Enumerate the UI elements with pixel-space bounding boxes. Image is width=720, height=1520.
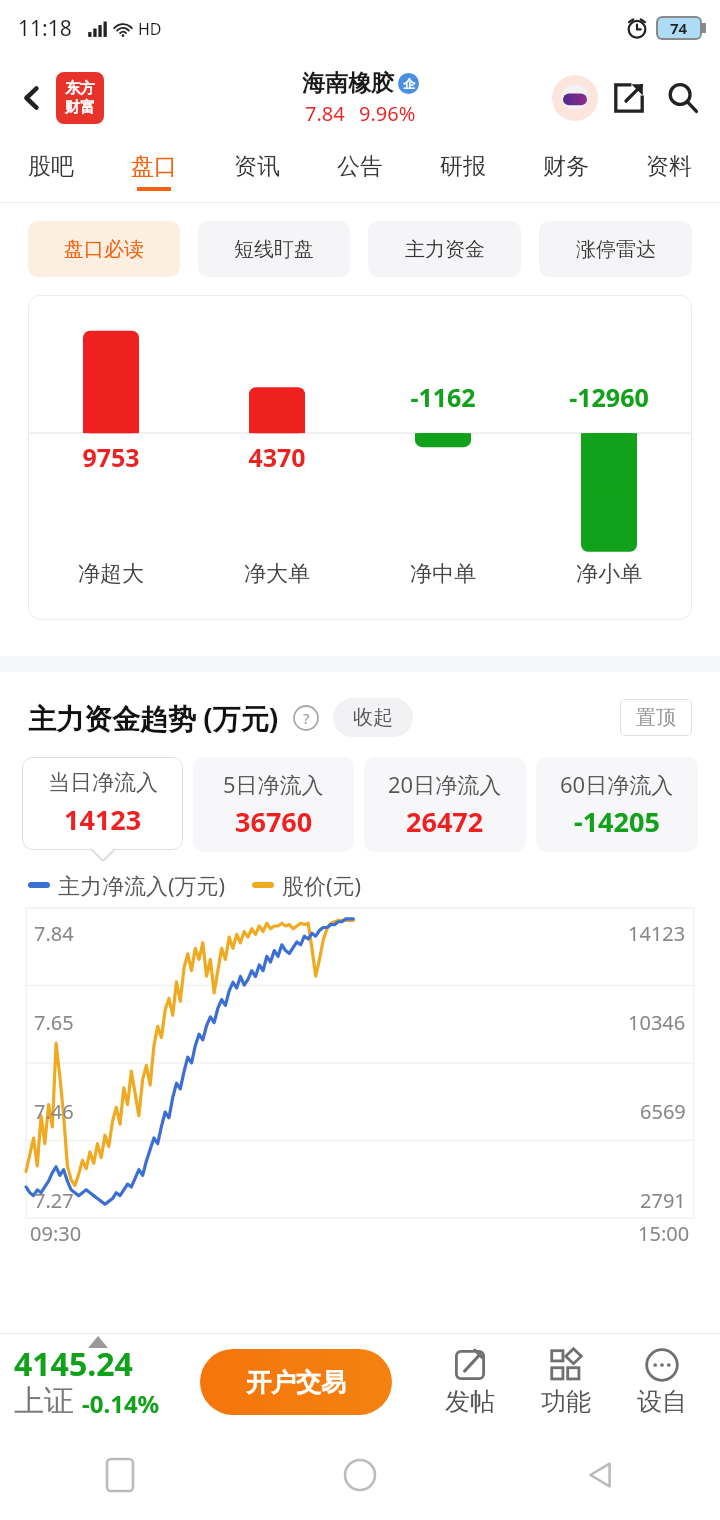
button[interactable]: 资料	[617, 140, 720, 202]
button[interactable]: 当日净流入	[22, 757, 183, 850]
staticText: 11:18	[18, 14, 72, 43]
staticText: 6569	[640, 1098, 686, 1125]
button[interactable]: 主力资金	[368, 221, 521, 277]
staticText: 14123	[64, 801, 142, 838]
button[interactable]: Search	[656, 71, 710, 125]
button[interactable]: 资讯	[205, 140, 308, 202]
button[interactable]: Back	[480, 1430, 720, 1520]
staticText: 7.46	[34, 1098, 74, 1125]
staticText: 净超大	[78, 560, 144, 588]
staticText: 设自	[637, 1386, 687, 1417]
button[interactable]: 20日净流入	[364, 757, 526, 852]
staticText: 74	[670, 18, 688, 38]
button[interactable]: East Money logo	[56, 72, 104, 124]
button[interactable]: Recents	[0, 1430, 240, 1520]
staticText: 26472	[406, 803, 484, 840]
staticText: 4145.24	[14, 1342, 133, 1386]
button[interactable]: Home	[240, 1430, 480, 1520]
staticText: -12960	[526, 380, 692, 414]
staticText: 股价(元)	[282, 870, 362, 900]
staticText: 09:30	[30, 1220, 82, 1247]
staticText: 净大单	[244, 560, 310, 588]
staticText: 60日净流入	[560, 769, 674, 799]
staticText: 7.65	[34, 1009, 74, 1036]
button[interactable]: 9753	[28, 295, 692, 620]
staticText: 海南橡胶	[302, 69, 394, 98]
staticText: 9.96%	[359, 100, 416, 127]
staticText: 主力净流入(万元)	[58, 870, 226, 900]
staticText: 7.84	[34, 920, 74, 947]
staticText: 15:00	[638, 1220, 690, 1247]
staticText: 功能	[541, 1386, 591, 1417]
staticText: 净中单	[410, 560, 476, 588]
staticText: 置顶	[636, 705, 676, 730]
button[interactable]: Back	[8, 74, 56, 122]
staticText: -1162	[360, 380, 526, 414]
staticText: 涨停雷达	[576, 237, 656, 262]
button[interactable]: 盘口	[102, 140, 205, 202]
staticText: ?	[303, 708, 310, 728]
staticText: 7.27	[34, 1187, 74, 1214]
staticText: 公告	[337, 152, 383, 181]
button[interactable]: Share	[602, 71, 656, 125]
staticText: 14123	[628, 920, 686, 947]
staticText: 收起	[353, 705, 393, 730]
staticText: HD	[138, 18, 162, 40]
staticText: 20日净流入	[388, 769, 502, 799]
staticText: 东方	[65, 79, 95, 98]
staticText: 36760	[235, 803, 313, 840]
staticText: 9753	[28, 440, 194, 474]
button[interactable]: 发帖	[422, 1334, 518, 1430]
button[interactable]: 公告	[308, 140, 411, 202]
staticText: 财务	[543, 152, 589, 181]
staticText: 7.84	[305, 100, 345, 127]
staticText: -0.14%	[82, 1387, 160, 1420]
staticText: 4370	[194, 440, 360, 474]
staticText: 开户交易	[246, 1367, 346, 1398]
button[interactable]: 盘口必读	[28, 221, 180, 277]
button[interactable]: Help	[291, 703, 321, 733]
staticText: -14205	[574, 803, 660, 840]
button[interactable]: 开户交易	[200, 1349, 392, 1415]
staticText: 盘口必读	[64, 237, 144, 262]
button[interactable]: 收起	[333, 698, 413, 737]
button[interactable]: 涨停雷达	[539, 221, 692, 277]
staticText: 资讯	[234, 152, 280, 181]
staticText: 净小单	[576, 560, 642, 588]
button[interactable]: 置顶	[620, 699, 692, 736]
staticText: 当日净流入	[48, 769, 158, 797]
staticText: 盘口	[131, 152, 177, 181]
button[interactable]: 财务	[514, 140, 617, 202]
staticText: 5日净流入	[223, 769, 324, 799]
staticText: 短线盯盘	[234, 237, 314, 262]
staticText: 财富	[65, 98, 95, 117]
staticText: 资料	[646, 152, 692, 181]
staticText: 主力资金趋势 (万元)	[28, 699, 279, 737]
button[interactable]: 设自	[614, 1334, 710, 1430]
button[interactable]: 功能	[518, 1334, 614, 1430]
button[interactable]: 股吧	[0, 140, 102, 202]
staticText: 发帖	[445, 1386, 495, 1417]
button[interactable]: 研报	[411, 140, 514, 202]
button[interactable]: 4145.24	[0, 1334, 200, 1430]
staticText: 企	[403, 76, 415, 91]
staticText: 股吧	[28, 152, 74, 181]
button[interactable]: 短线盯盘	[198, 221, 350, 277]
staticText: 主力资金	[405, 237, 485, 262]
button[interactable]: 5日净流入	[193, 757, 354, 852]
staticText: 2791	[640, 1187, 686, 1214]
button[interactable]: AI assistant	[548, 71, 602, 125]
staticText: 10346	[628, 1009, 686, 1036]
button[interactable]: 60日净流入	[536, 757, 698, 852]
staticText: 研报	[440, 152, 486, 181]
staticText: 上证	[14, 1382, 74, 1420]
